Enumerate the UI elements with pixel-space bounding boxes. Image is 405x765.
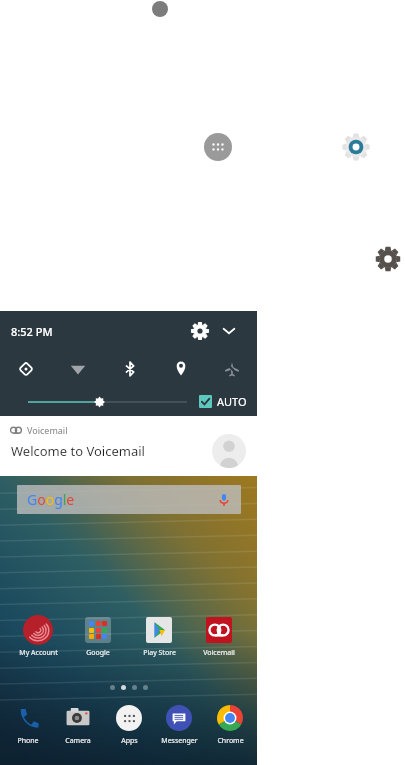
button[interactable]: Bluetooth bbox=[104, 351, 155, 387]
staticText: AUTO bbox=[217, 394, 247, 409]
staticText: Voicemail bbox=[203, 648, 235, 658]
button[interactable]: Voicemail bbox=[0, 416, 257, 476]
staticText: Play Store bbox=[143, 648, 176, 658]
button[interactable]: Apps bbox=[106, 703, 152, 746]
staticText: Google bbox=[27, 490, 75, 509]
button[interactable]: Camera bbox=[55, 703, 101, 746]
button[interactable]: Settings bbox=[189, 320, 211, 342]
button[interactable]: Voice search bbox=[216, 492, 232, 508]
button[interactable]: Dot bbox=[152, 1, 168, 17]
button[interactable]: Chrome bbox=[207, 703, 253, 746]
button[interactable]: Play Store bbox=[136, 615, 182, 658]
staticText: Messenger bbox=[161, 736, 198, 746]
button[interactable]: Wi-Fi bbox=[52, 351, 104, 387]
button[interactable]: Expand bbox=[219, 321, 239, 341]
button[interactable]: AUTO bbox=[197, 394, 247, 409]
button[interactable]: Messenger bbox=[156, 703, 202, 746]
button[interactable]: Google bbox=[75, 615, 121, 658]
staticText: Voicemail bbox=[27, 424, 68, 436]
button[interactable]: Settings bbox=[375, 246, 401, 272]
button[interactable]: Airplane mode bbox=[206, 351, 257, 387]
button[interactable]: Apps bbox=[204, 133, 232, 161]
button[interactable]: Location bbox=[155, 351, 206, 387]
button[interactable]: Phone bbox=[5, 703, 51, 746]
button[interactable]: Google bbox=[17, 485, 241, 514]
button[interactable]: Auto rotate bbox=[0, 351, 52, 387]
button[interactable]: Brightness bbox=[28, 390, 187, 414]
staticText: Chrome bbox=[217, 736, 244, 746]
staticText: 8:52 PM bbox=[11, 324, 53, 339]
staticText: Camera bbox=[65, 736, 91, 746]
staticText: Phone bbox=[17, 736, 39, 746]
staticText: My Account bbox=[19, 648, 58, 658]
button[interactable]: My Account bbox=[15, 615, 61, 658]
staticText: Welcome to Voicemail bbox=[11, 442, 145, 460]
staticText: Apps bbox=[121, 736, 138, 746]
staticText: Google bbox=[86, 648, 110, 658]
button[interactable]: Voicemail bbox=[196, 615, 242, 658]
button[interactable]: Settings bbox=[341, 132, 371, 162]
